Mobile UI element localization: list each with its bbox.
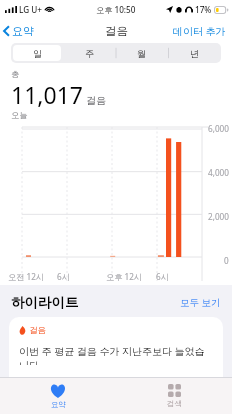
staticText: 6시 <box>156 271 169 282</box>
button[interactable]: 월 <box>117 45 166 61</box>
button[interactable]: 모두 보기 <box>177 293 224 312</box>
staticText: 걸음 <box>29 325 46 336</box>
staticText: 6,000 <box>208 123 229 134</box>
staticText: LG U+ <box>19 4 43 15</box>
staticText: 년 <box>190 48 199 59</box>
button[interactable]: 일 <box>13 45 61 61</box>
button[interactable]: 검색 <box>116 378 232 414</box>
staticText: 하이라이트 <box>11 294 79 311</box>
staticText: 요약 <box>12 24 34 38</box>
staticText: 일 <box>33 48 42 59</box>
staticText: 11,017 <box>11 79 83 110</box>
staticText: 오전 12시 <box>8 271 45 282</box>
staticText: 4,000 <box>208 167 229 178</box>
button[interactable]: 년 <box>170 45 219 61</box>
staticText: 걸음 <box>105 24 128 38</box>
staticText: 오후 10:50 <box>96 4 136 15</box>
staticText: 월 <box>137 48 146 59</box>
staticText: 검색 <box>167 399 182 408</box>
staticText: 17% <box>195 4 212 15</box>
button[interactable]: 데이터 추가 <box>167 20 232 42</box>
staticText: 6시 <box>57 271 70 282</box>
staticText: 오늘 <box>11 110 28 120</box>
staticText: 주 <box>85 48 94 59</box>
staticText: 오후 12시 <box>106 271 143 282</box>
staticText: 요약 <box>51 400 66 409</box>
staticText: 모두 보기 <box>180 296 221 309</box>
staticText: 데이터 추가 <box>173 24 226 38</box>
button[interactable]: 걸음 <box>9 317 223 377</box>
button[interactable]: 요약 <box>0 20 41 42</box>
staticText: 2,000 <box>208 211 229 222</box>
staticText: 총 <box>11 69 20 79</box>
button[interactable]: 주 <box>65 45 113 61</box>
staticText: 걸음 <box>86 94 106 107</box>
staticText: 0 <box>224 255 229 266</box>
button[interactable]: 요약 <box>0 378 116 414</box>
staticText: 이번 주 평균 걸음 수가 지난주보다 늘었습니다. <box>19 344 213 365</box>
